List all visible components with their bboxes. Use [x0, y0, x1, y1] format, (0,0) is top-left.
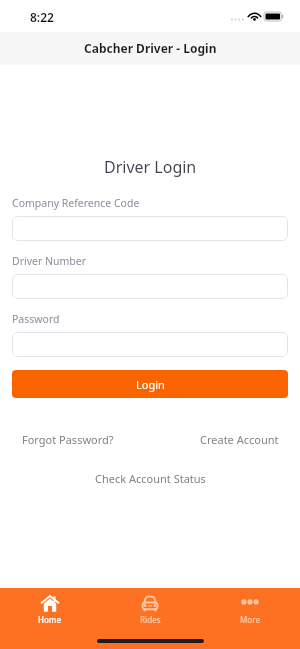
- button[interactable]: Password: [12, 332, 288, 357]
- staticText: More: [240, 614, 261, 625]
- staticText: Forgot Password?: [22, 432, 114, 447]
- staticText: Driver Number: [12, 254, 87, 268]
- button[interactable]: Rides: [100, 588, 200, 628]
- button[interactable]: Forgot Password?: [22, 432, 114, 447]
- button[interactable]: Company Reference Code: [12, 216, 288, 241]
- staticText: Create Account: [200, 432, 279, 447]
- button[interactable]: Check Account Status: [95, 471, 206, 486]
- button[interactable]: Login: [12, 370, 288, 398]
- staticText: Login: [136, 377, 165, 392]
- button[interactable]: Create Account: [200, 432, 279, 447]
- staticText: Check Account Status: [95, 471, 206, 486]
- staticText: 8:22: [30, 9, 54, 25]
- staticText: Home: [38, 614, 62, 625]
- button[interactable]: Driver Number: [12, 274, 288, 299]
- button[interactable]: More: [200, 588, 300, 628]
- staticText: Driver Login: [104, 156, 197, 178]
- staticText: Rides: [140, 614, 161, 625]
- button[interactable]: Home: [0, 588, 100, 628]
- staticText: Cabcher Driver - Login: [84, 40, 217, 56]
- staticText: Password: [12, 312, 60, 326]
- staticText: Company Reference Code: [12, 196, 140, 210]
